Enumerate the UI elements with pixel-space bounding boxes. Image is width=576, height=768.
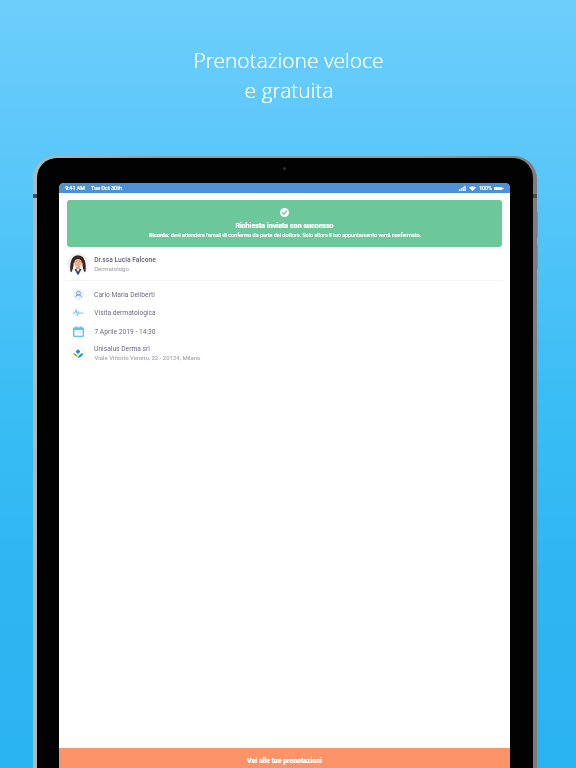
button[interactable]: Visita dermatologica	[59, 304, 510, 321]
staticText: Unisalus Derma srl	[94, 345, 150, 353]
button[interactable]: 7 Aprile 2019 - 14:30	[59, 323, 510, 340]
staticText: Visita dermatologica	[94, 309, 156, 317]
staticText: Vai alle tue prenotazioni	[247, 757, 322, 765]
button[interactable]: Unisalus Derma srl	[59, 344, 510, 361]
staticText: 100%	[479, 185, 492, 191]
staticText: Dr.ssa Lucia Falcone	[94, 256, 156, 264]
button[interactable]: Richiesta inviata con successo	[67, 200, 502, 247]
staticText: Dermatologo	[94, 265, 129, 272]
staticText: Carlo Maria Deliberti	[94, 291, 155, 299]
staticText: Tue Oct 30th	[91, 185, 122, 191]
button[interactable]: Dr.ssa Lucia Falcone	[59, 253, 510, 275]
button[interactable]: Carlo Maria Deliberti	[59, 286, 510, 303]
staticText: e gratuita	[244, 76, 334, 105]
button[interactable]: Vai alle tue prenotazioni	[59, 748, 510, 768]
staticText: Richiesta inviata con successo	[235, 221, 334, 229]
staticText: 7 Aprile 2019 - 14:30	[94, 328, 156, 336]
staticText: 9:41 AM	[65, 185, 85, 191]
staticText: Viale Vittorio Veneto, 22 - 20124, Milan…	[94, 354, 201, 361]
staticText: Ricorda	[149, 232, 168, 238]
staticText: Prenotazione veloce	[193, 46, 384, 75]
staticText: : devi attendere l'email di conferma da …	[168, 232, 421, 238]
